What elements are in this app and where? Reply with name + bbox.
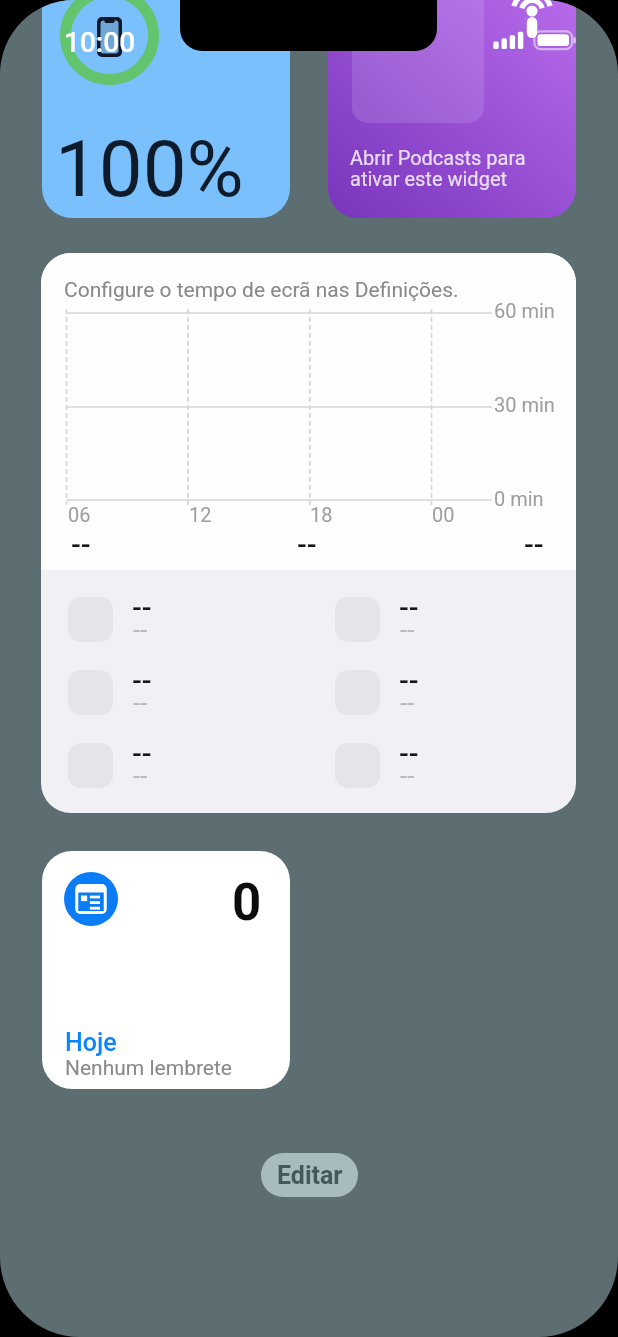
staticText: -- (524, 528, 544, 562)
staticText: -- (400, 761, 415, 791)
staticText: -- (71, 528, 91, 562)
button[interactable]: Configure o tempo de ecrã nas Definições… (41, 253, 576, 813)
staticText: -- (132, 591, 152, 625)
button[interactable]: Editar (261, 1153, 358, 1197)
staticText: -- (133, 615, 148, 645)
staticText: -- (400, 688, 415, 718)
staticText: 30 min (494, 393, 555, 416)
staticText: Nenhum lembrete (65, 1056, 232, 1081)
staticText: 18 (310, 503, 333, 526)
staticText: -- (133, 761, 148, 791)
staticText: 0 min (494, 487, 544, 510)
staticText: 60 min (494, 299, 555, 322)
button[interactable]: 100% (42, 0, 290, 218)
staticText: 0 (232, 873, 262, 933)
staticText: -- (399, 591, 419, 625)
staticText: Configure o tempo de ecrã nas Definições… (64, 278, 459, 303)
staticText: Editar (277, 1161, 343, 1190)
staticText: Abrir Podcasts para ativar este widget (350, 146, 526, 191)
staticText: -- (400, 615, 415, 645)
staticText: 00 (432, 503, 455, 526)
staticText: Hoje (65, 1028, 117, 1057)
button[interactable]: 0 (42, 851, 290, 1089)
staticText: -- (297, 528, 317, 562)
staticText: -- (133, 688, 148, 718)
staticText: 06 (68, 503, 91, 526)
staticText: -- (132, 737, 152, 771)
staticText: 12 (189, 503, 212, 526)
staticText: 100% (55, 124, 244, 215)
staticText: 10:00 (64, 26, 136, 59)
staticText: -- (399, 737, 419, 771)
staticText: -- (399, 664, 419, 698)
staticText: -- (132, 664, 152, 698)
other: Signal and battery status (492, 28, 580, 54)
button[interactable]: Abrir Podcasts para ativar este widget (328, 0, 576, 218)
